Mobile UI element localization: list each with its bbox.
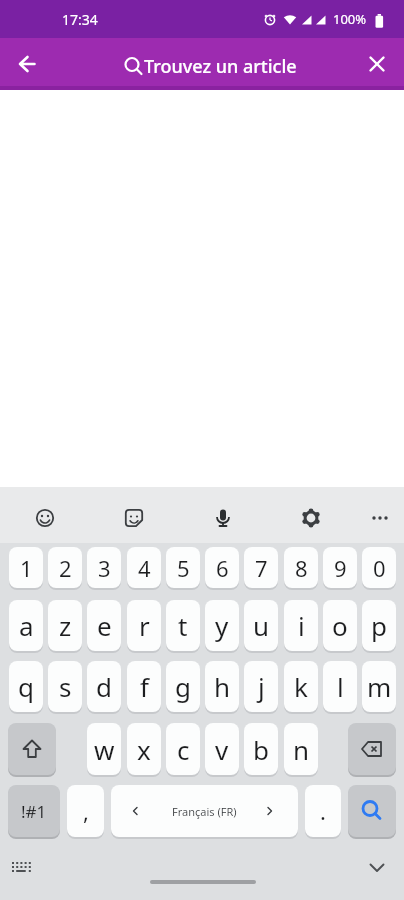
button[interactable]: .: [305, 785, 341, 837]
button[interactable]: z: [48, 600, 82, 651]
button[interactable]: [8, 723, 56, 775]
button[interactable]: g: [166, 661, 200, 712]
button[interactable]: [203, 498, 243, 538]
button[interactable]: s: [48, 661, 82, 712]
staticText: h: [214, 669, 231, 704]
button[interactable]: o: [323, 600, 357, 651]
button[interactable]: a: [9, 600, 43, 651]
staticText: a: [19, 608, 34, 643]
button[interactable]: [114, 498, 154, 538]
staticText: 3: [98, 553, 111, 583]
staticText: w: [94, 732, 115, 767]
button[interactable]: [362, 855, 392, 881]
staticText: 4: [138, 553, 151, 583]
button[interactable]: 6: [205, 547, 239, 588]
button[interactable]: k: [284, 661, 318, 712]
button[interactable]: e: [87, 600, 121, 651]
button[interactable]: t: [166, 600, 200, 651]
staticText: 5: [177, 553, 190, 583]
button[interactable]: u: [244, 600, 278, 651]
staticText: t: [178, 608, 188, 643]
button[interactable]: l: [323, 661, 357, 712]
button[interactable]: [25, 498, 65, 538]
button[interactable]: [348, 785, 396, 837]
staticText: i: [298, 608, 305, 643]
staticText: r: [139, 608, 150, 643]
staticText: 1: [20, 553, 33, 583]
button[interactable]: 8: [284, 547, 318, 588]
staticText: Trouvez un article: [144, 54, 297, 79]
staticText: p: [371, 608, 387, 643]
staticText: y: [215, 608, 229, 643]
button[interactable]: Français (FR): [111, 785, 298, 837]
button[interactable]: [7, 44, 47, 84]
staticText: v: [215, 732, 229, 767]
button[interactable]: 5: [166, 547, 200, 588]
button[interactable]: 9: [323, 547, 357, 588]
button[interactable]: y: [205, 600, 239, 651]
button[interactable]: [291, 498, 331, 538]
button[interactable]: 0: [362, 547, 396, 588]
staticText: .: [320, 796, 326, 826]
button[interactable]: 2: [48, 547, 82, 588]
button[interactable]: w: [87, 723, 121, 775]
staticText: Français (FR): [172, 804, 237, 819]
staticText: e: [97, 608, 112, 643]
button[interactable]: q: [9, 661, 43, 712]
staticText: k: [294, 669, 308, 704]
button[interactable]: f: [127, 661, 161, 712]
button[interactable]: [348, 723, 396, 775]
button[interactable]: c: [166, 723, 200, 775]
staticText: 8: [295, 553, 308, 583]
staticText: m: [367, 669, 392, 704]
staticText: ,: [83, 796, 89, 826]
staticText: x: [137, 732, 151, 767]
button[interactable]: r: [127, 600, 161, 651]
staticText: q: [18, 669, 34, 704]
button[interactable]: [360, 498, 400, 538]
button[interactable]: 1: [9, 547, 43, 588]
staticText: 6: [216, 553, 229, 583]
staticText: s: [59, 669, 72, 704]
button[interactable]: b: [244, 723, 278, 775]
staticText: 100%: [333, 10, 367, 28]
staticText: n: [293, 732, 310, 767]
staticText: g: [175, 669, 191, 704]
button[interactable]: [357, 44, 397, 84]
button[interactable]: n: [284, 723, 318, 775]
button[interactable]: x: [127, 723, 161, 775]
button[interactable]: d: [87, 661, 121, 712]
button[interactable]: !#1: [8, 785, 60, 837]
staticText: 9: [334, 553, 347, 583]
button[interactable]: Trouvez un article: [144, 40, 324, 92]
staticText: 0: [373, 553, 386, 583]
button[interactable]: m: [362, 661, 396, 712]
staticText: 7: [255, 553, 268, 583]
staticText: d: [96, 669, 112, 704]
button[interactable]: ,: [67, 785, 104, 837]
staticText: f: [140, 669, 149, 704]
staticText: !#1: [21, 800, 47, 823]
button[interactable]: p: [362, 600, 396, 651]
staticText: o: [332, 608, 348, 643]
button[interactable]: [150, 880, 256, 884]
button[interactable]: 4: [127, 547, 161, 588]
staticText: j: [258, 669, 265, 704]
staticText: z: [59, 608, 72, 643]
staticText: l: [337, 669, 344, 704]
button[interactable]: i: [284, 600, 318, 651]
button[interactable]: 3: [87, 547, 121, 588]
button[interactable]: h: [205, 661, 239, 712]
staticText: b: [253, 732, 269, 767]
button[interactable]: v: [205, 723, 239, 775]
staticText: c: [177, 732, 190, 767]
staticText: 2: [59, 553, 72, 583]
staticText: u: [253, 608, 270, 643]
staticText: 17:34: [62, 10, 98, 29]
button[interactable]: 7: [244, 547, 278, 588]
button[interactable]: j: [244, 661, 278, 712]
